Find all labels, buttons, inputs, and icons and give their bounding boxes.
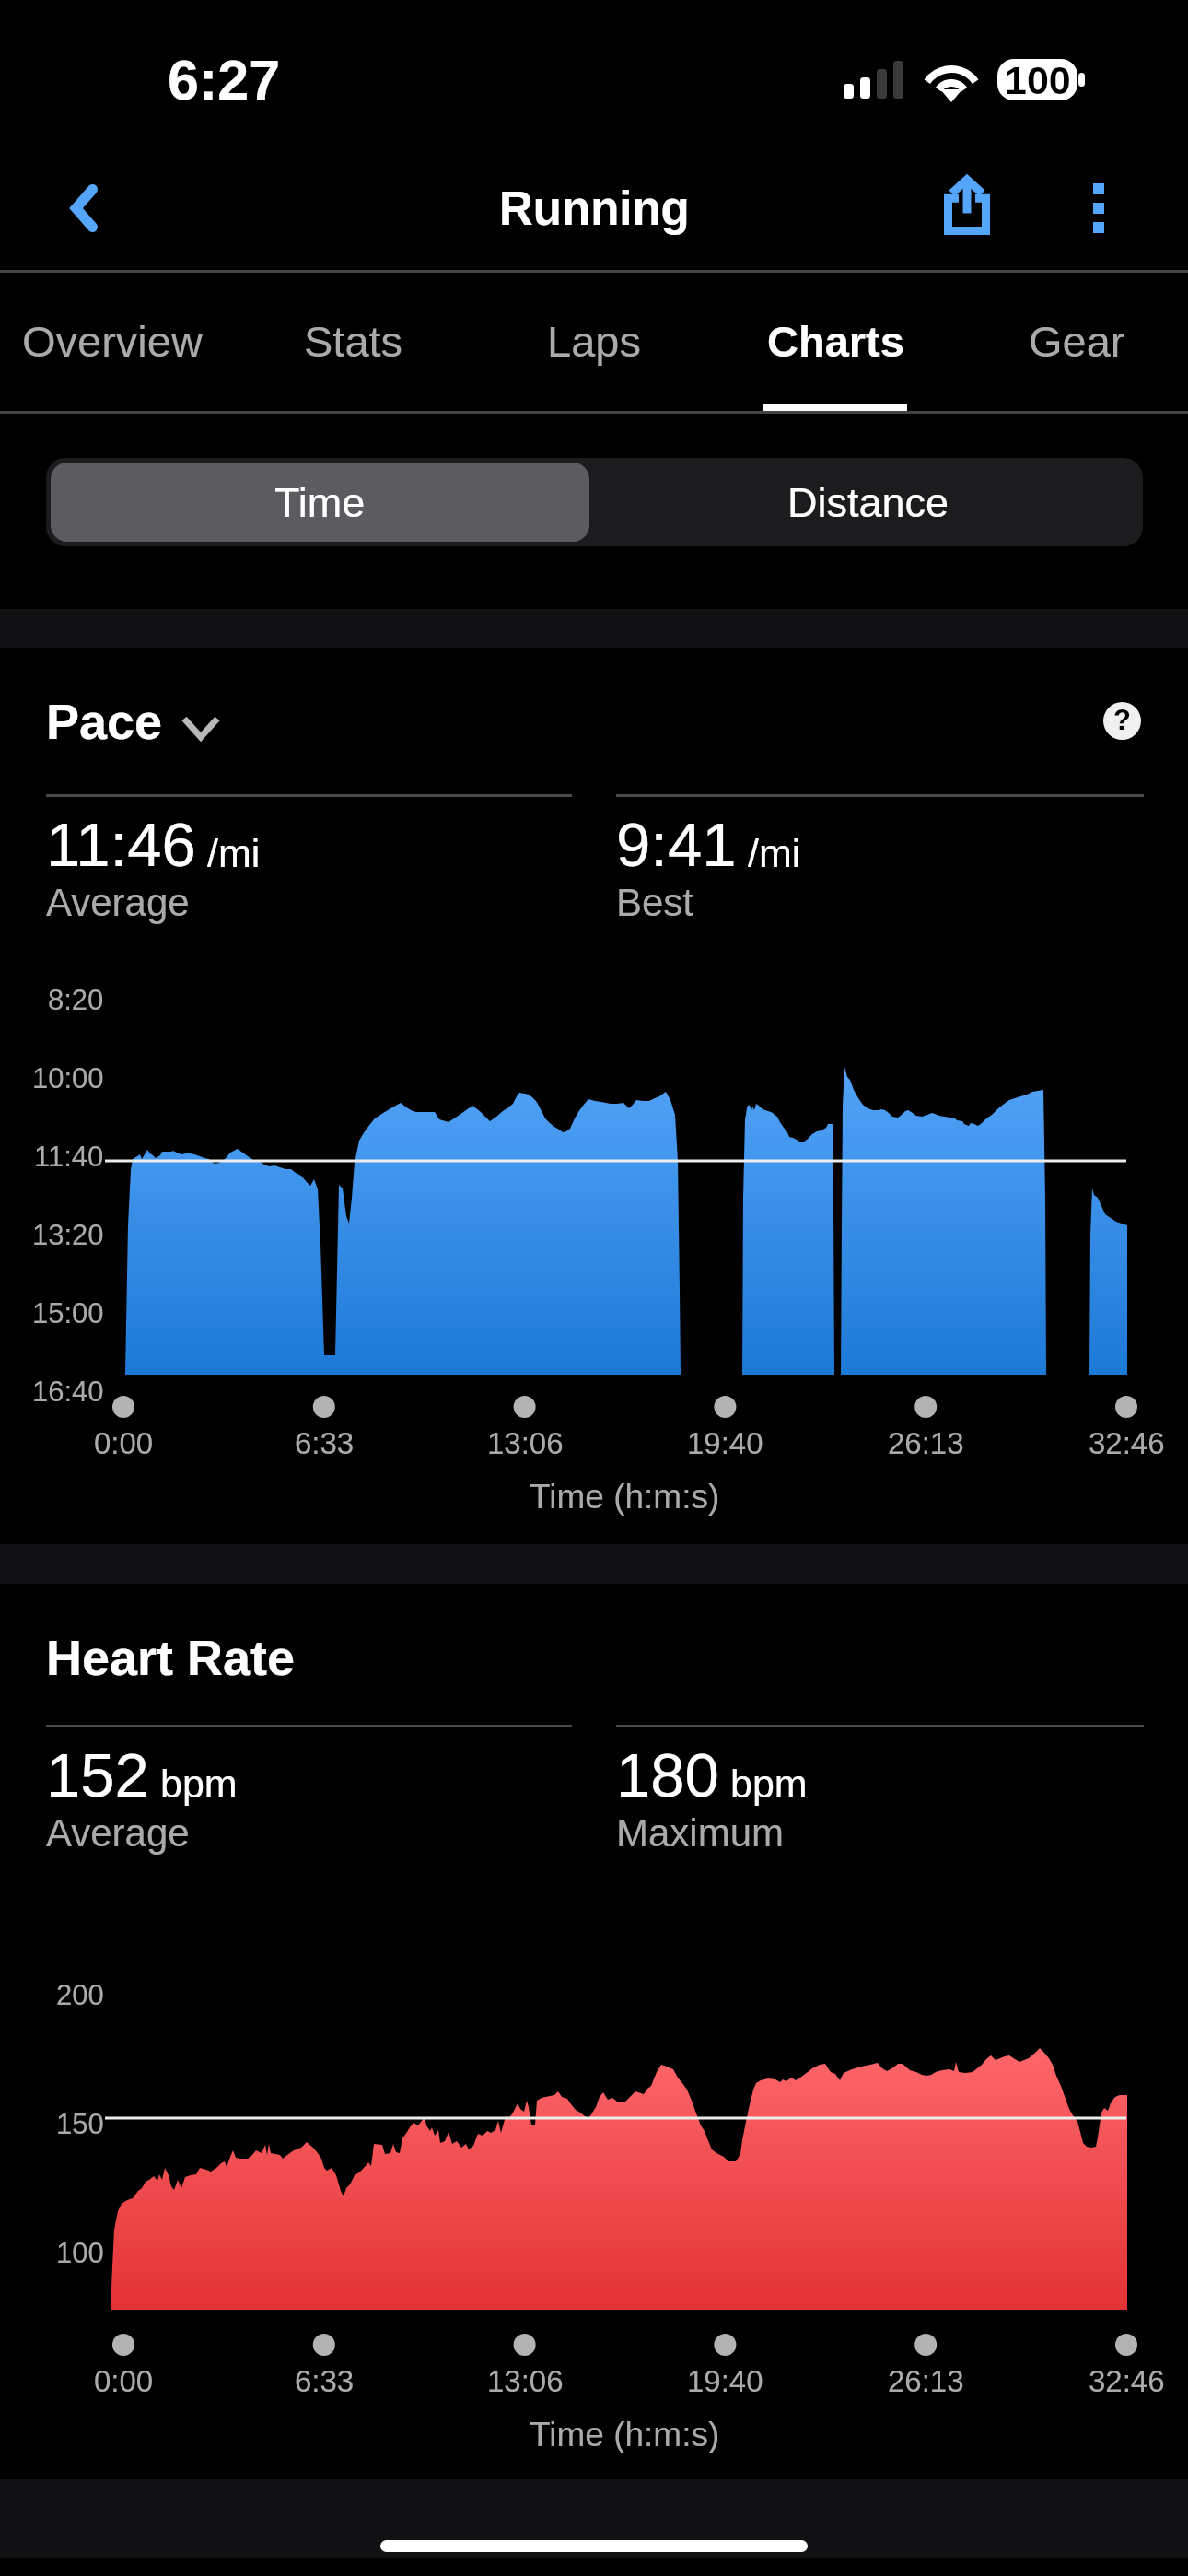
button[interactable]: Help — [1089, 687, 1155, 754]
staticText: /mi — [748, 831, 801, 875]
staticText: 180 — [616, 1740, 719, 1809]
staticText: Maximum — [616, 1811, 785, 1855]
staticText: Running — [499, 182, 690, 235]
staticText: Time (h:m:s) — [530, 1478, 720, 1516]
staticText: 100 — [1005, 59, 1071, 100]
staticText: 100 — [56, 2237, 104, 2269]
button[interactable]: Pace — [46, 694, 220, 749]
staticText: Charts — [767, 317, 904, 366]
staticText: 0:00 — [94, 1426, 154, 1460]
button[interactable]: Laps — [474, 271, 714, 412]
button[interactable]: Back — [41, 165, 127, 252]
staticText: ? — [1113, 704, 1131, 736]
staticText: 26:13 — [888, 1426, 964, 1460]
staticText: Heart Rate — [46, 1630, 296, 1685]
staticText: bpm — [160, 1762, 238, 1806]
button[interactable]: Charts — [716, 271, 955, 412]
button[interactable]: More options — [1054, 164, 1143, 252]
staticText: 13:06 — [487, 2364, 564, 2398]
staticText: 11:40 — [34, 1141, 104, 1173]
staticText: 6:33 — [295, 2364, 355, 2398]
staticText: 19:40 — [687, 1426, 763, 1460]
staticText: 10:00 — [32, 1062, 104, 1095]
staticText: 11:46 — [46, 810, 196, 879]
staticText: 13:06 — [487, 1426, 564, 1460]
staticText: 15:00 — [32, 1297, 104, 1329]
staticText: 150 — [56, 2108, 104, 2140]
staticText: Laps — [547, 317, 641, 366]
button[interactable]: Stats — [234, 271, 473, 412]
button[interactable]: Share — [923, 162, 1011, 251]
button[interactable]: Distance — [594, 458, 1143, 546]
staticText: Best — [616, 881, 694, 924]
staticText: 152 — [46, 1740, 149, 1809]
button[interactable]: Time — [51, 463, 589, 542]
staticText: Distance — [787, 479, 949, 525]
staticText: bpm — [730, 1762, 808, 1806]
staticText: 32:46 — [1089, 2364, 1165, 2398]
staticText: Time — [274, 479, 366, 525]
staticText: 6:33 — [295, 1426, 355, 1460]
button[interactable]: Heart Rate — [46, 1630, 296, 1685]
staticText: 9:41 — [616, 810, 737, 879]
staticText: 6:27 — [168, 49, 281, 111]
staticText: 32:46 — [1089, 1426, 1165, 1460]
button[interactable]: Overview — [0, 271, 232, 412]
staticText: 13:20 — [32, 1219, 104, 1251]
button[interactable]: Gear — [957, 271, 1188, 412]
staticText: Time (h:m:s) — [530, 2416, 720, 2453]
staticText: 8:20 — [48, 984, 104, 1016]
staticText: Average — [46, 1811, 190, 1855]
staticText: Overview — [22, 317, 203, 366]
staticText: 16:40 — [32, 1376, 104, 1408]
staticText: Stats — [304, 317, 403, 366]
staticText: Average — [46, 881, 190, 924]
staticText: 19:40 — [687, 2364, 763, 2398]
staticText: Gear — [1029, 317, 1125, 366]
staticText: Pace — [46, 694, 163, 749]
staticText: /mi — [207, 831, 261, 875]
staticText: 26:13 — [888, 2364, 964, 2398]
staticText: 0:00 — [94, 2364, 154, 2398]
staticText: 200 — [56, 1979, 104, 2011]
